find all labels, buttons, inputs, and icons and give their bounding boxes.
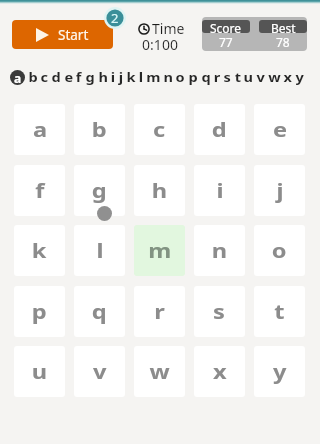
staticText: 77: [219, 34, 233, 50]
button[interactable]: f: [14, 165, 65, 216]
staticText: g: [92, 177, 107, 204]
staticText: q: [201, 68, 212, 86]
button[interactable]: j: [254, 165, 305, 216]
staticText: l: [139, 68, 143, 86]
staticText: c: [41, 68, 48, 86]
staticText: h: [98, 68, 109, 86]
staticText: r: [154, 298, 165, 325]
staticText: d: [51, 68, 62, 86]
staticText: t: [235, 68, 241, 86]
button[interactable]: m: [134, 225, 185, 276]
staticText: q: [92, 298, 107, 325]
staticText: s: [224, 68, 231, 86]
staticText: p: [188, 68, 199, 86]
staticText: c: [153, 116, 166, 143]
staticText: g: [85, 68, 96, 86]
button[interactable]: r: [134, 286, 185, 337]
button[interactable]: c: [134, 104, 185, 155]
staticText: j: [276, 177, 284, 204]
staticText: b: [28, 68, 39, 86]
staticText: 0:100: [138, 35, 182, 54]
staticText: m: [146, 68, 161, 86]
staticText: s: [213, 298, 226, 325]
button[interactable]: q: [74, 286, 125, 337]
staticText: x: [283, 68, 292, 86]
staticText: x: [213, 358, 227, 385]
staticText: o: [175, 68, 186, 86]
staticText: w: [149, 358, 171, 385]
button[interactable]: t: [254, 286, 305, 337]
staticText: l: [96, 237, 104, 264]
staticText: 2: [111, 9, 119, 27]
button[interactable]: p: [14, 286, 65, 337]
button[interactable]: Start: [12, 20, 113, 49]
button[interactable]: k: [14, 225, 65, 276]
button[interactable]: y: [254, 346, 305, 397]
staticText: Time: [152, 19, 185, 38]
button[interactable]: h: [134, 165, 185, 216]
button[interactable]: x: [194, 346, 245, 397]
button[interactable]: l: [74, 225, 125, 276]
staticText: u: [243, 68, 254, 86]
staticText: y: [273, 358, 287, 385]
staticText: d: [212, 116, 227, 143]
staticText: n: [212, 237, 227, 264]
button[interactable]: e: [254, 104, 305, 155]
staticText: r: [214, 68, 220, 86]
button[interactable]: o: [254, 225, 305, 276]
staticText: u: [32, 358, 47, 385]
staticText: i: [111, 68, 115, 86]
button[interactable]: a: [14, 104, 65, 155]
staticText: Score: [210, 20, 242, 33]
staticText: v: [93, 358, 107, 385]
staticText: p: [32, 298, 47, 325]
button[interactable]: u: [14, 346, 65, 397]
button[interactable]: g: [74, 165, 125, 216]
staticText: o: [272, 237, 287, 264]
staticText: 78: [276, 34, 290, 50]
staticText: n: [163, 68, 174, 86]
staticText: k: [126, 68, 137, 86]
staticText: b: [92, 116, 107, 143]
staticText: i: [216, 177, 224, 204]
staticText: t: [274, 298, 285, 325]
staticText: f: [35, 177, 45, 204]
staticText: a: [14, 70, 22, 85]
button[interactable]: s: [194, 286, 245, 337]
button[interactable]: v: [74, 346, 125, 397]
staticText: Start: [58, 26, 89, 44]
staticText: y: [295, 68, 304, 86]
staticText: v: [256, 68, 265, 86]
staticText: j: [119, 68, 123, 86]
staticText: Best: [271, 20, 296, 33]
button[interactable]: d: [194, 104, 245, 155]
staticText: a: [33, 116, 47, 143]
button[interactable]: n: [194, 225, 245, 276]
staticText: k: [32, 237, 47, 264]
button[interactable]: i: [194, 165, 245, 216]
staticText: e: [64, 68, 73, 86]
button[interactable]: w: [134, 346, 185, 397]
staticText: h: [152, 177, 167, 204]
staticText: e: [273, 116, 287, 143]
staticText: m: [148, 237, 172, 264]
button[interactable]: b: [74, 104, 125, 155]
staticText: f: [76, 68, 82, 86]
staticText: w: [268, 68, 282, 86]
